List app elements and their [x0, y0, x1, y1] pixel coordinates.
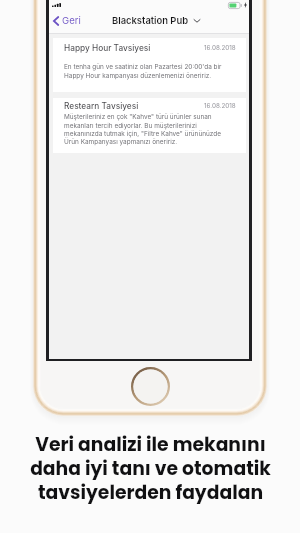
staticText: Müşterileriniz en çok "Kahve" türü ürünl… — [64, 113, 221, 145]
button[interactable]: Geri — [49, 13, 89, 29]
staticText: Geri — [62, 15, 81, 27]
staticText: Happy Hour Tavsiyesi — [64, 43, 151, 53]
staticText: En tenha gün ve saatiniz olan Pazartesi … — [64, 63, 222, 79]
staticText: Veri analizi ile mekanını daha iyi tanı … — [30, 431, 271, 505]
staticText: Restearn Tavsiyesi — [64, 101, 139, 111]
staticText: 16.08.2018 — [204, 102, 236, 110]
button[interactable]: Happy Hour Tavsiyesi — [53, 38, 246, 92]
button[interactable]: Blackstation Pub — [110, 14, 202, 27]
staticText: 16.08.2018 — [204, 44, 236, 52]
staticText: Blackstation Pub — [112, 15, 189, 26]
button[interactable]: Restearn Tavsiyesi — [53, 98, 246, 153]
